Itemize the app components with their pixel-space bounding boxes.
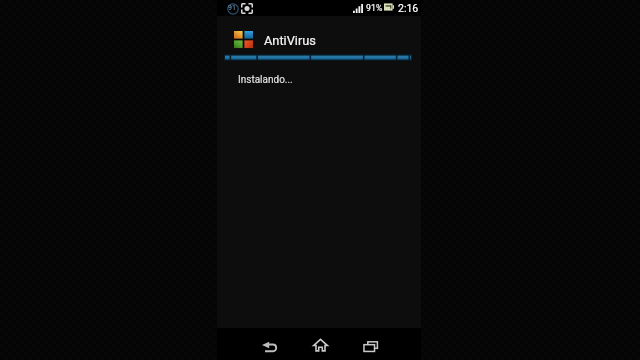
staticText: 91 xyxy=(228,4,236,12)
staticText: AntiVirus xyxy=(264,33,316,48)
staticText: 2:16 xyxy=(398,2,419,14)
button[interactable]: Back xyxy=(245,330,294,360)
button[interactable]: AntiVirus xyxy=(225,24,413,54)
button[interactable]: Recent apps xyxy=(346,330,395,360)
staticText: Instalando... xyxy=(238,74,293,86)
staticText: 91% xyxy=(366,3,383,13)
button[interactable]: Home xyxy=(296,329,345,360)
